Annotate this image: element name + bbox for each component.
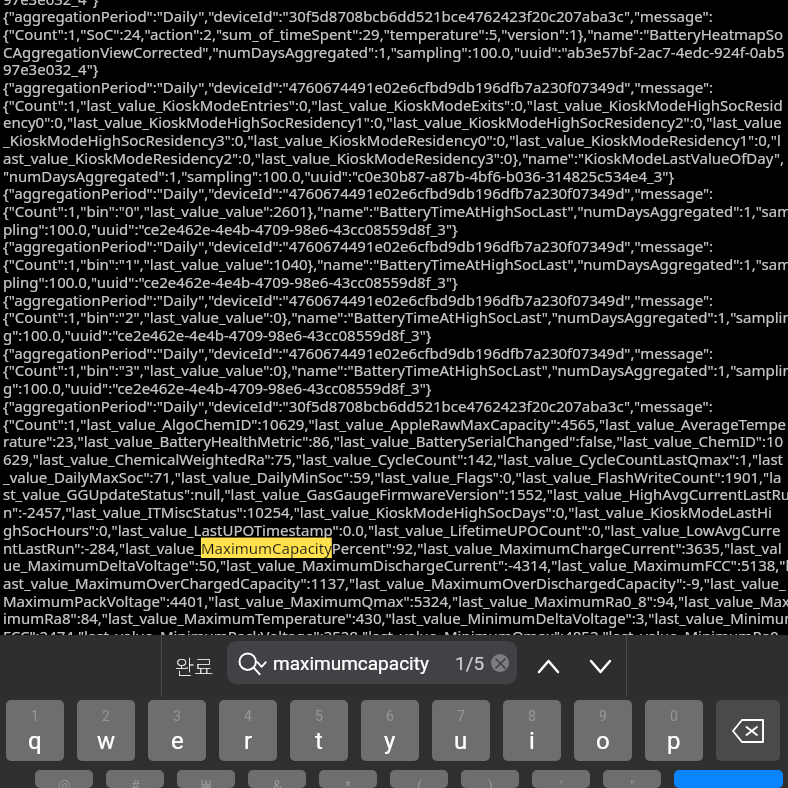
staticText: ency0":0,"last_value_KioskModeHighSocRes… xyxy=(3,112,782,132)
button[interactable]: ' xyxy=(532,770,590,788)
staticText: 4 xyxy=(244,708,252,724)
staticText: w xyxy=(97,727,116,755)
staticText: y xyxy=(384,727,396,755)
staticText: {"aggregationPeriod":"Daily","deviceId":… xyxy=(3,183,714,203)
staticText: {"Count":1,"bin":"1","last_value_value":… xyxy=(3,254,788,274)
staticText: q xyxy=(28,727,42,755)
staticText: {"aggregationPeriod":"Daily","deviceId":… xyxy=(3,396,713,416)
staticText: ₩ xyxy=(201,778,212,788)
button[interactable]: 7 xyxy=(432,700,490,761)
staticText: 97e3e032_4"} xyxy=(3,59,99,79)
button[interactable]: 8 xyxy=(503,700,561,761)
staticText: _KioskModeHighSocResidency3":0,"last_val… xyxy=(3,130,781,150)
staticText: rature":23,"last_value_BatteryHealthMetr… xyxy=(3,431,784,451)
button[interactable]: & xyxy=(248,770,306,788)
staticText: 629,"last_value_ChemicalWeightedRa":75,"… xyxy=(3,449,783,469)
button[interactable]: ( xyxy=(390,770,448,788)
button[interactable]: " xyxy=(603,770,661,788)
staticText: e xyxy=(171,727,184,755)
button[interactable]: 0 xyxy=(645,700,703,761)
staticText: {"Count":1,"bin":"3","last_value_value":… xyxy=(3,360,788,380)
button[interactable]: 6 xyxy=(361,700,419,761)
staticText: ue_MaximumDeltaVoltage":50,"last_value_M… xyxy=(3,555,788,575)
staticText: u xyxy=(454,727,468,755)
staticText: st_value_GGUpdateStatus":null,"last_valu… xyxy=(3,484,788,504)
button[interactable]: # xyxy=(106,770,164,788)
staticText: {"aggregationPeriod":"Daily","deviceId":… xyxy=(3,77,714,97)
staticText: 1/5 xyxy=(455,652,485,674)
staticText: 완료 xyxy=(175,651,214,681)
staticText: imumRa8":84,"last_value_MaximumTemperatu… xyxy=(3,608,788,628)
staticText: {"Count":1,"bin":"2","last_value_value":… xyxy=(3,307,788,327)
button[interactable]: 9 xyxy=(574,700,632,761)
staticText: {"Count":1,"last_value_AlgoChemID":10629… xyxy=(3,414,787,434)
button[interactable]: ₩ xyxy=(177,770,235,788)
button[interactable]: 1 xyxy=(6,700,64,761)
staticText: # xyxy=(131,778,140,788)
staticText: r xyxy=(244,727,253,755)
staticText: {"aggregationPeriod":"Daily","deviceId":… xyxy=(3,236,714,256)
staticText: ntLastRun":-284,"last_value_MaximumCapac… xyxy=(3,538,782,558)
staticText: n":-2457,"last_value_ITMiscStatus":10254… xyxy=(3,502,772,522)
staticText: 2 xyxy=(102,708,110,724)
staticText: 8 xyxy=(528,708,536,724)
staticText: {"aggregationPeriod":"Daily","deviceId":… xyxy=(3,6,713,26)
button[interactable]: Search xyxy=(674,770,783,788)
staticText: ) xyxy=(488,778,493,788)
staticText: 0 xyxy=(670,708,678,724)
staticText: MaximumPackVoltage":4401,"last_value_Max… xyxy=(3,591,788,611)
staticText: 5 xyxy=(315,708,323,724)
button[interactable]: 5 xyxy=(290,700,348,761)
staticText: 3 xyxy=(173,708,181,724)
button[interactable]: Clear search xyxy=(491,654,509,672)
staticText: {"aggregationPeriod":"Daily","deviceId":… xyxy=(3,343,714,363)
button[interactable]: 4 xyxy=(219,700,277,761)
staticText: 1 xyxy=(31,708,39,724)
staticText: t xyxy=(315,727,323,755)
staticText: @ xyxy=(58,778,71,788)
staticText: 7 xyxy=(457,708,465,724)
staticText: o xyxy=(596,727,610,755)
staticText: _value_DailyMaxSoc":71,"last_value_Daily… xyxy=(3,467,782,487)
staticText: maximumcapacity xyxy=(273,652,429,674)
staticText: 9 xyxy=(599,708,607,724)
button[interactable]: Backspace xyxy=(716,700,780,761)
button[interactable]: 3 xyxy=(148,700,206,761)
button[interactable]: 2 xyxy=(77,700,135,761)
staticText: {"Count":1,"bin":"0","last_value_value":… xyxy=(3,201,788,221)
staticText: pling":100.0,"uuid":"ce2e462e-4e4b-4709-… xyxy=(3,219,458,239)
button[interactable]: ) xyxy=(461,770,519,788)
button[interactable]: 완료 xyxy=(162,635,226,697)
staticText: g":100.0,"uuid":"ce2e462e-4e4b-4709-98e6… xyxy=(3,378,432,398)
staticText: pling":100.0,"uuid":"ce2e462e-4e4b-4709-… xyxy=(3,272,458,292)
button[interactable]: maximumcapacity xyxy=(227,641,517,684)
button[interactable]: Next match xyxy=(575,635,626,697)
staticText: ghSocHours":0,"last_value_LastUPOTimesta… xyxy=(3,520,781,540)
staticText: CAggregationViewCorrected","numDaysAggre… xyxy=(3,42,785,62)
button[interactable]: * xyxy=(319,770,377,788)
staticText: {"Count":1,"SoC":24,"action":2,"sum_of_t… xyxy=(3,24,784,44)
staticText: ( xyxy=(417,778,422,788)
staticText: {"Count":1,"last_value_KioskModeEntries"… xyxy=(3,95,783,115)
staticText: g":100.0,"uuid":"ce2e462e-4e4b-4709-98e6… xyxy=(3,325,432,345)
staticText: FCC":2474,"last_value_MinimumPackVoltage… xyxy=(3,626,786,646)
staticText: "numDaysAggregated":1,"sampling":100.0,"… xyxy=(3,166,675,186)
staticText: ' xyxy=(560,778,563,788)
button[interactable]: @ xyxy=(35,770,93,788)
staticText: & xyxy=(273,778,282,788)
staticText: ast_value_MaximumOverChargedCapacity":11… xyxy=(3,573,786,593)
staticText: * xyxy=(345,778,352,788)
staticText: " xyxy=(630,778,635,788)
staticText: ast_value_KioskModeResidency2":0,"last_v… xyxy=(3,148,785,168)
staticText: 97e3e032_4"} xyxy=(3,0,99,9)
button[interactable]: Previous match xyxy=(523,635,574,697)
staticText: p xyxy=(667,727,681,755)
staticText: {"aggregationPeriod":"Daily","deviceId":… xyxy=(3,290,714,310)
staticText: i xyxy=(529,727,535,755)
staticText: 6 xyxy=(386,708,394,724)
